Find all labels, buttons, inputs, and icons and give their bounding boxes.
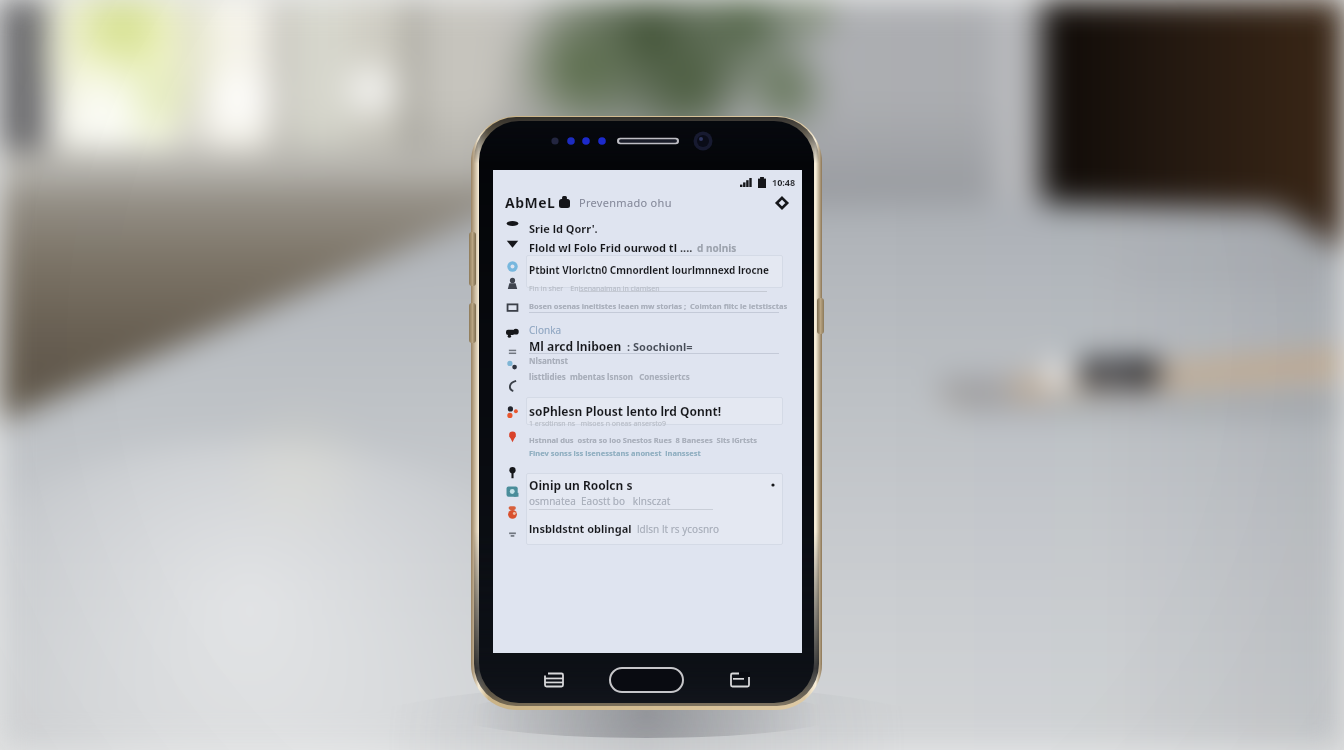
button[interactable]: [526, 255, 783, 288]
staticText: Ptbint Vlorlctn0 Cmnordlent lourlmnnexd …: [529, 263, 770, 277]
staticText: Bosen osenas ineitistes leaen mw storias…: [529, 301, 788, 311]
staticText: AbMeL: [505, 193, 556, 212]
staticText: Oinip un Roolcn s: [529, 477, 633, 493]
staticText: lnsbldstnt oblingal: [529, 521, 632, 536]
staticText: d nolnis: [697, 241, 737, 255]
button[interactable]: [526, 473, 783, 545]
staticText: Finev sonss lss lsenesstans anonest lnan…: [529, 448, 701, 458]
button[interactable]: Options: [772, 193, 792, 213]
staticText: Prevenmado ohu: [579, 195, 672, 210]
button[interactable]: Flold wl Folo Frid ourwod tl: [493, 237, 802, 257]
staticText: Clonka: [529, 323, 562, 337]
staticText: osmnatea Eaostt bo klnsczat: [529, 494, 671, 508]
staticText: soPhlesn Ploust lento lrd Qonnt!: [529, 403, 722, 419]
staticText: Hstnnal dus ostra so loo Snestos Rues 8 …: [529, 435, 757, 445]
staticText: 10:48: [772, 176, 796, 188]
staticText: ....: [680, 240, 693, 255]
staticText: Flold wl Folo Frid ourwod tl: [529, 240, 680, 255]
button[interactable]: Srie ld Qorr'.: [493, 218, 802, 238]
staticText: ldlsn lt rs ycosnro: [637, 522, 720, 536]
staticText: 1 ersdtinsn ns misoes n oneas ansersto9: [529, 419, 666, 429]
button[interactable]: Ml arcd lniboen: [529, 338, 693, 354]
staticText: Ml arcd lniboen: [529, 338, 622, 354]
staticText: Fin in sher Enisenanaiman in ciamisen: [529, 284, 660, 294]
staticText: : Soochionl=: [627, 339, 693, 354]
staticText: listtlidies mbentas lsnson Conessiertcs: [529, 371, 690, 382]
staticText: Srie ld Qorr'.: [529, 221, 598, 236]
button[interactable]: [526, 397, 783, 425]
staticText: Nlsantnst: [529, 355, 569, 366]
